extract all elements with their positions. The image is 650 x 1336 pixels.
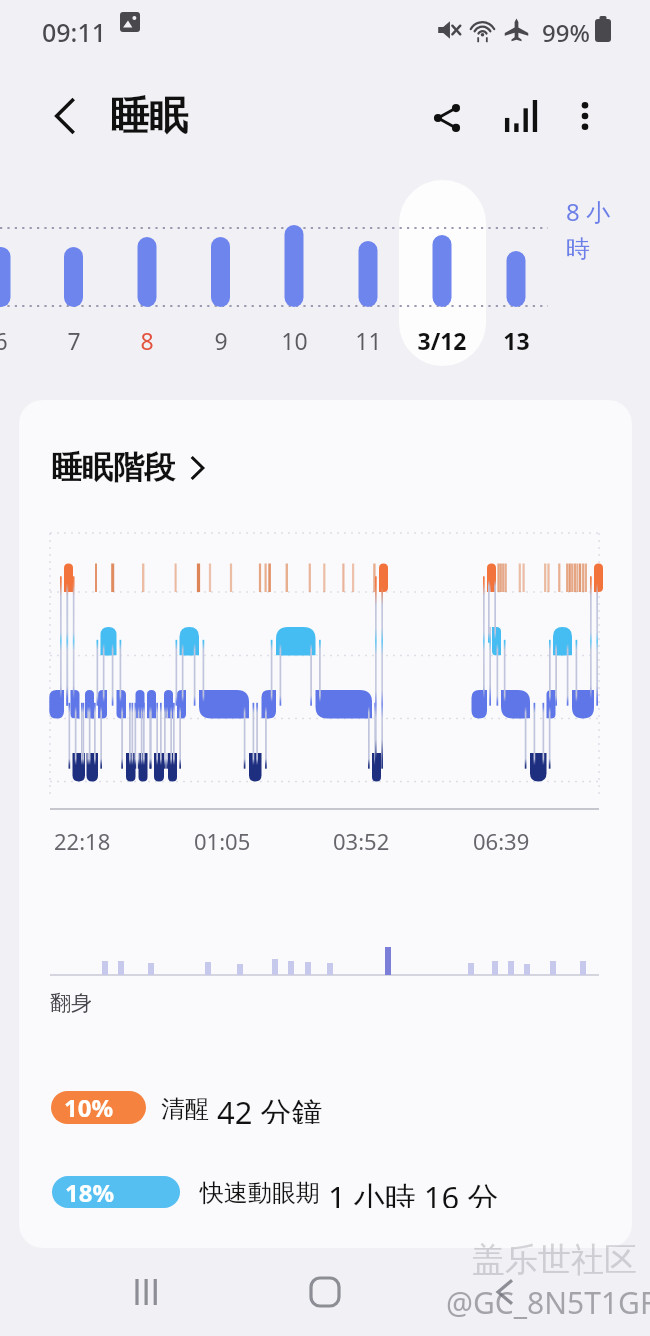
staticText: 8 xyxy=(140,325,154,356)
button[interactable]: Back xyxy=(40,90,92,142)
staticText: 快速動眼期 xyxy=(200,1178,320,1208)
staticText: 18% xyxy=(65,1176,115,1208)
staticText: 01:05 xyxy=(194,826,251,856)
staticText: 03:52 xyxy=(333,826,390,856)
staticText: 睡眠階段 xyxy=(51,448,175,487)
button[interactable]: Home xyxy=(290,1257,360,1327)
button[interactable]: Back xyxy=(470,1257,540,1327)
staticText: 10% xyxy=(64,1091,114,1124)
button[interactable]: 8 xyxy=(102,320,192,360)
staticText: 1 小時 16 分 xyxy=(328,1176,499,1208)
button[interactable]: 10 xyxy=(249,320,339,360)
staticText: 睡眠 xyxy=(110,91,188,140)
staticText: 13 xyxy=(503,325,530,356)
button[interactable]: More options xyxy=(557,88,613,144)
staticText: 時 xyxy=(566,234,590,264)
staticText: @GC_8N5T1GF xyxy=(446,1282,650,1323)
button[interactable]: 10% xyxy=(51,1091,213,1124)
button[interactable]: 13 xyxy=(471,320,561,360)
staticText: 3/12 xyxy=(417,325,467,356)
button[interactable]: Recents xyxy=(110,1257,180,1327)
button[interactable]: 睡眠階段 xyxy=(51,448,204,487)
staticText: 6 xyxy=(0,325,8,356)
staticText: 22:18 xyxy=(54,826,111,856)
staticText: 06:39 xyxy=(473,826,530,856)
button[interactable]: 6 xyxy=(0,320,46,360)
staticText: 翻身 xyxy=(50,990,92,1016)
staticText: 清醒 xyxy=(161,1094,209,1124)
button[interactable]: 18% xyxy=(52,1176,351,1208)
button[interactable]: Statistics xyxy=(492,88,548,144)
button[interactable]: 7 xyxy=(29,320,119,360)
button[interactable]: 11 xyxy=(323,320,413,360)
staticText: 8 小 xyxy=(566,195,610,228)
staticText: 99% xyxy=(542,16,590,49)
staticText: 42 分鐘 xyxy=(217,1091,323,1124)
staticText: 7 xyxy=(67,325,81,356)
staticText: 11 xyxy=(355,325,382,356)
button[interactable]: 9 xyxy=(176,320,266,360)
staticText: 09:11 xyxy=(42,15,107,49)
staticText: 盖乐世社区 xyxy=(472,1239,637,1281)
staticText: 10 xyxy=(281,325,308,356)
button[interactable]: Share xyxy=(419,90,475,146)
button[interactable]: 3/12 xyxy=(397,320,487,360)
staticText: 9 xyxy=(214,325,228,356)
